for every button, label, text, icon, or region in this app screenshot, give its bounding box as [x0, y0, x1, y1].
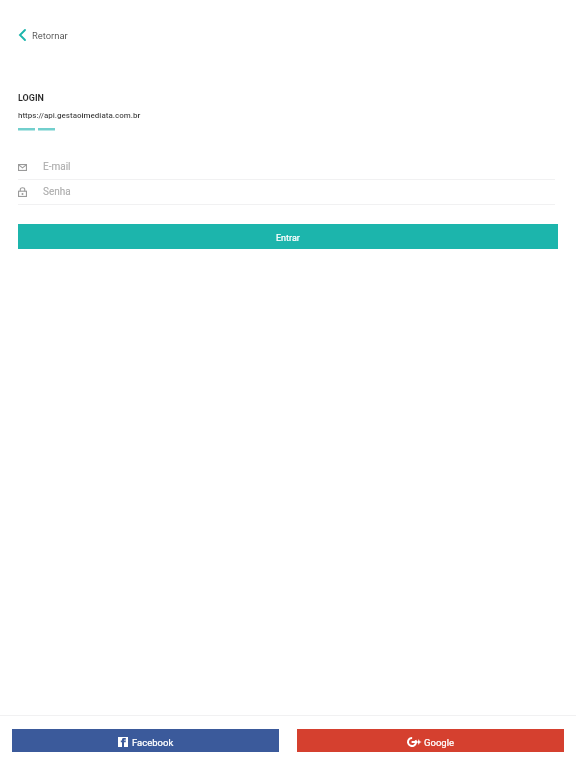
staticText: E-mail: [43, 161, 71, 173]
staticText: Senha: [43, 186, 71, 198]
button[interactable]: Entrar: [18, 224, 558, 249]
staticText: LOGIN: [18, 93, 44, 104]
staticText: Entrar: [276, 233, 300, 244]
button[interactable]: E-mail: [18, 155, 555, 179]
button[interactable]: Retornar: [0, 22, 576, 48]
staticText: https://api.gestaoimediata.com.br: [18, 111, 141, 120]
staticText: Facebook: [132, 737, 174, 748]
button[interactable]: Senha: [18, 180, 555, 204]
staticText: Retornar: [32, 30, 68, 41]
staticText: Google: [424, 737, 454, 748]
button[interactable]: Google: [297, 729, 564, 752]
button[interactable]: Facebook: [12, 729, 279, 752]
